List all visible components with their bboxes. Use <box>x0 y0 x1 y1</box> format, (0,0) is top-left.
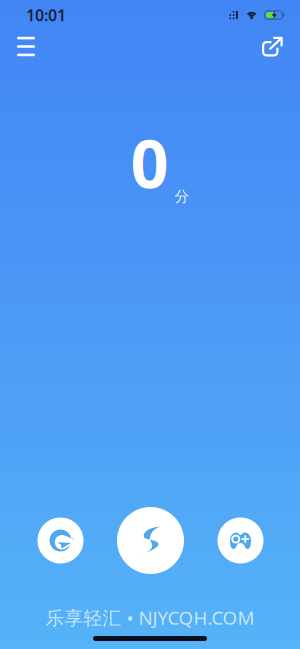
button[interactable]: Menu <box>9 31 43 62</box>
button[interactable]: Start <box>117 507 184 574</box>
staticText: 乐享轻汇 • NJYCQH.COM <box>45 605 254 630</box>
button[interactable]: Games <box>217 517 263 563</box>
staticText: 10:01 <box>26 4 66 26</box>
button[interactable]: Accelerate <box>37 517 83 563</box>
button[interactable]: Share <box>254 30 291 62</box>
staticText: 0 <box>130 118 168 206</box>
staticText: 分 <box>174 187 189 205</box>
